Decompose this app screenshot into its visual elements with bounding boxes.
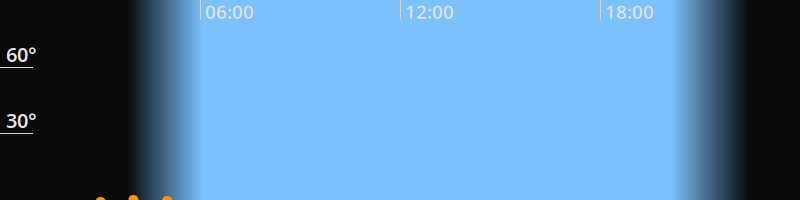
staticText: 60° xyxy=(6,41,37,68)
staticText: 12:00 xyxy=(405,0,454,24)
staticText: 30° xyxy=(6,107,37,134)
staticText: 18:00 xyxy=(605,0,654,24)
staticText: 06:00 xyxy=(205,0,254,24)
